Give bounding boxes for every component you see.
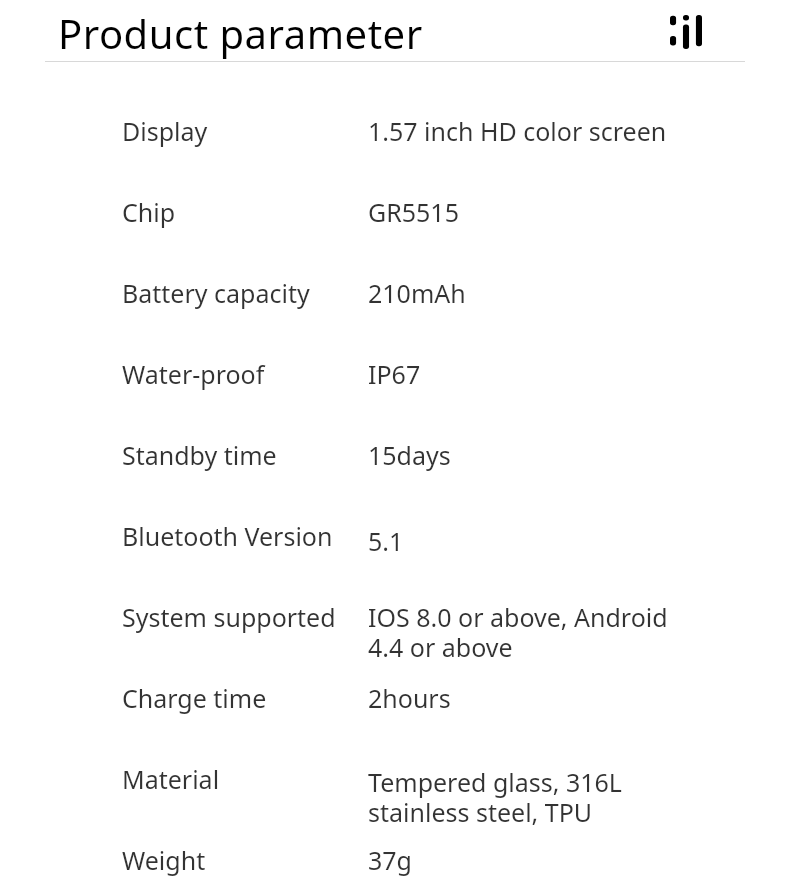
button[interactable]: Battery capacity [0,276,790,310]
button[interactable]: Display [0,114,790,148]
staticText: Water-proof [122,357,265,391]
button[interactable]: Product parameter [58,6,423,60]
staticText: 2hours [368,681,451,715]
staticText: Standby time [122,438,277,472]
staticText: Weight [122,843,206,877]
staticText: 37g [368,843,412,877]
button[interactable]: Chip [0,195,790,229]
staticText: Material [122,762,220,796]
staticText: System supported [122,600,336,634]
staticText: 5.1 [368,524,404,558]
staticText: Bluetooth Version [122,519,333,553]
staticText: Tempered glass, 316L stainless steel, TP… [368,765,622,830]
staticText: IP67 [368,357,421,391]
button[interactable]: Charge time [0,681,790,715]
staticText: Battery capacity [122,276,310,310]
staticText: Display [122,114,208,148]
button[interactable]: System supported [0,600,790,665]
staticText: 15days [368,438,451,472]
staticText: 1.57 inch HD color screen [368,114,667,148]
button[interactable]: Standby time [0,438,790,472]
button[interactable]: Material [0,762,790,827]
button[interactable]: Bluetooth Version [0,519,790,553]
staticText: Charge time [122,681,267,715]
button[interactable]: Water-proof [0,357,790,391]
staticText: Product parameter [58,6,423,60]
staticText: 210mAh [368,276,466,310]
staticText: GR5515 [368,195,459,229]
staticText: Chip [122,195,176,229]
button[interactable]: Menu [668,13,704,51]
button[interactable]: Weight [0,843,790,877]
staticText: IOS 8.0 or above, Android 4.4 or above [368,600,668,665]
